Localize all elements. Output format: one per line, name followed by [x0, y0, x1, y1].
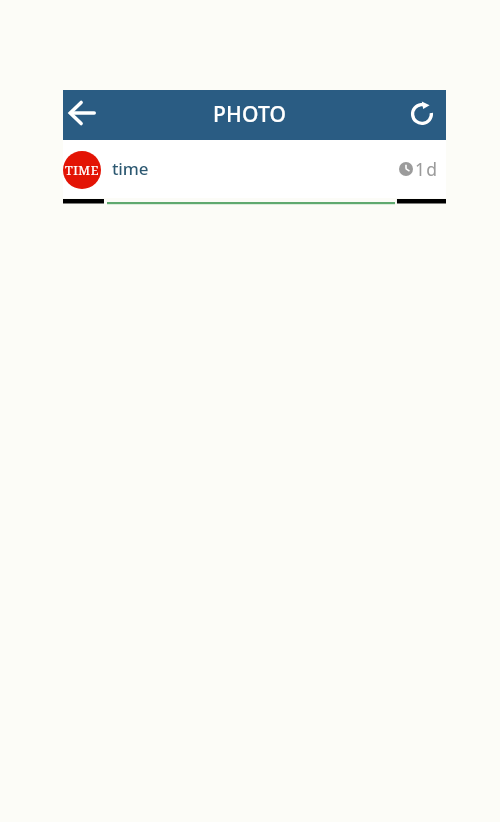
staticText: PHOTO [213, 100, 287, 129]
button[interactable]: Refresh [402, 90, 446, 140]
staticText: TIME [65, 162, 99, 179]
staticText: 1d [415, 157, 439, 181]
button[interactable]: Back [63, 90, 107, 140]
button[interactable]: TIME [63, 140, 446, 198]
staticText: time [112, 157, 149, 180]
